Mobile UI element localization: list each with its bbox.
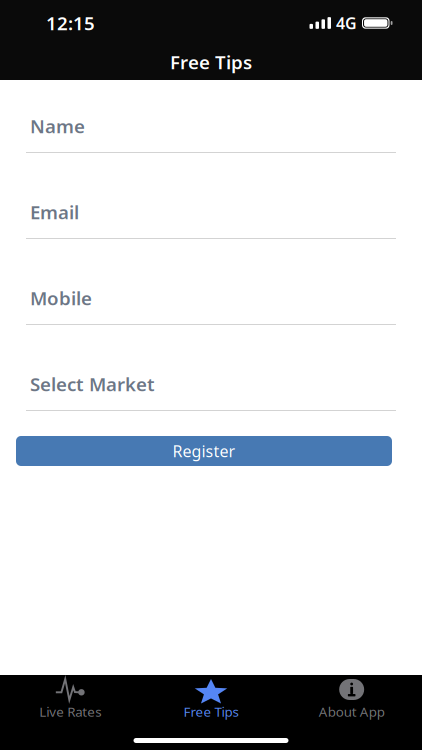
- staticText: Mobile: [30, 286, 92, 310]
- staticText: Live Rates: [39, 703, 101, 720]
- staticText: Select Market: [30, 372, 155, 396]
- button[interactable]: About App: [281, 675, 422, 721]
- staticText: Free Tips: [170, 50, 252, 74]
- staticText: 12:15: [46, 11, 95, 35]
- staticText: Email: [30, 200, 79, 224]
- button[interactable]: Free Tips: [141, 675, 281, 721]
- button[interactable]: Live Rates: [0, 675, 141, 721]
- staticText: About App: [319, 703, 385, 720]
- staticText: Name: [30, 114, 85, 138]
- staticText: Free Tips: [183, 703, 238, 720]
- staticText: 4G: [336, 12, 357, 34]
- button[interactable]: Register: [16, 436, 392, 466]
- staticText: Register: [172, 440, 235, 462]
